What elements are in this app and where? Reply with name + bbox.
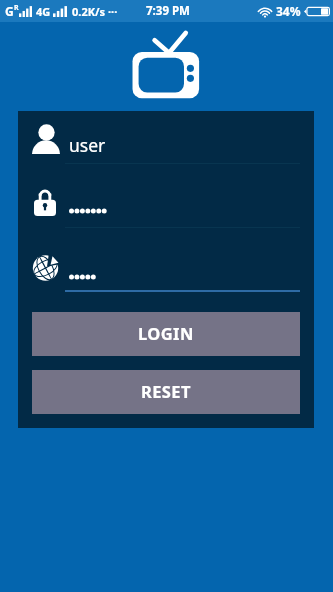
staticText: ··· bbox=[108, 4, 118, 19]
button[interactable]: RESET bbox=[32, 370, 300, 414]
staticText: 34% bbox=[276, 3, 301, 19]
button[interactable] bbox=[32, 183, 300, 235]
button[interactable]: LOGIN bbox=[32, 312, 300, 356]
staticText: RESET bbox=[141, 380, 191, 402]
staticText: R bbox=[14, 3, 19, 13]
button[interactable]: user bbox=[32, 119, 300, 171]
staticText: 7:39 PM bbox=[146, 3, 190, 19]
staticText: G bbox=[5, 3, 14, 19]
staticText: LOGIN bbox=[138, 322, 194, 344]
staticText: 0.2K/s bbox=[72, 4, 106, 19]
staticText: 4G bbox=[36, 4, 51, 19]
staticText: user bbox=[69, 133, 106, 157]
button[interactable] bbox=[32, 247, 300, 299]
